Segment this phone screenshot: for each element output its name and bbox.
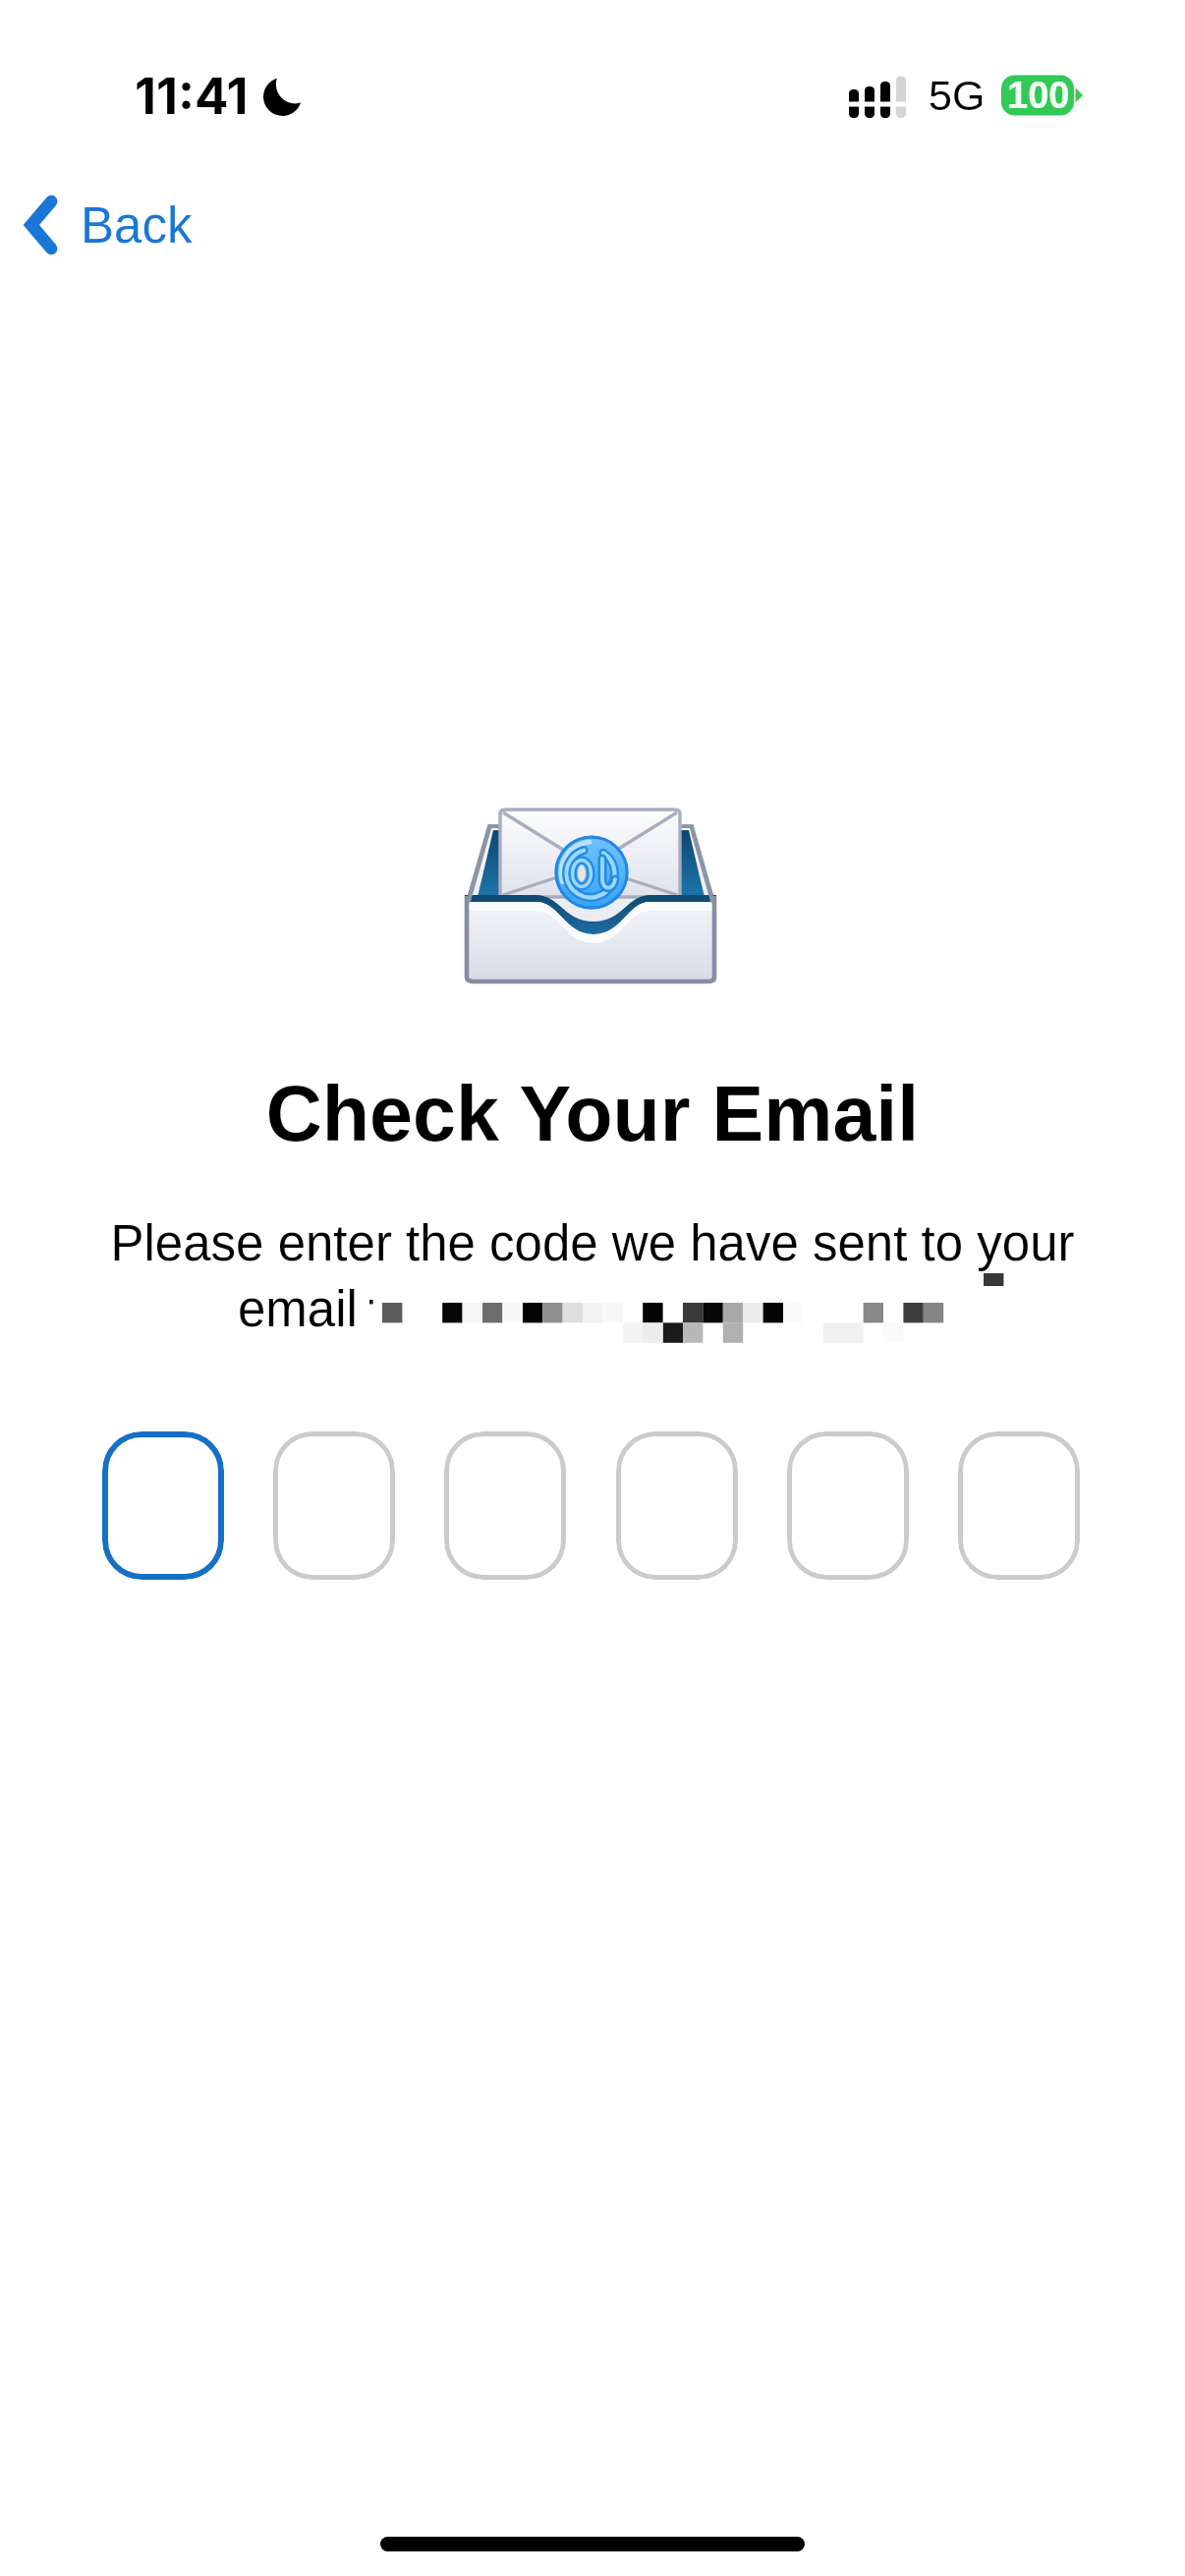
button[interactable]: Verification code digit 4 [616,1431,738,1580]
staticText: 5G [929,72,986,119]
staticText: Check Your Email [0,1070,1185,1156]
staticText: Back [81,197,193,253]
button[interactable]: Verification code digit 5 [787,1431,909,1580]
staticText: 100 [1007,75,1070,116]
staticText: email [238,1281,358,1337]
button[interactable]: Verification code digit 1 [102,1431,224,1580]
staticText: Please enter the code we have sent to yo… [0,1215,1185,1271]
button[interactable]: Verification code digit 2 [273,1431,395,1580]
button[interactable]: Verification code digit 3 [444,1431,566,1580]
staticText: 11:41 [135,66,249,127]
button[interactable]: Back [0,183,216,267]
button[interactable]: Verification code digit 6 [958,1431,1080,1580]
